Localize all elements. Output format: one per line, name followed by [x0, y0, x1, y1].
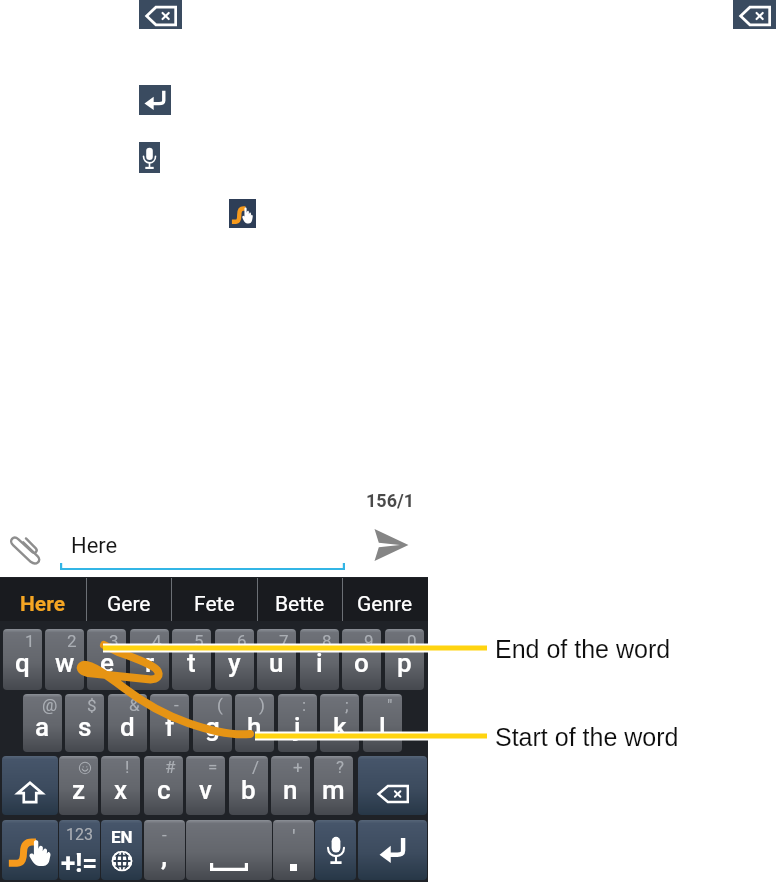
staticText: Here: [20, 592, 66, 617]
button[interactable]: 3: [87, 629, 126, 690]
button[interactable]: -: [150, 694, 189, 752]
button[interactable]: 9: [342, 629, 381, 690]
staticText: c: [157, 775, 171, 805]
button[interactable]: ;: [320, 694, 359, 752]
button[interactable]: Trace input: [229, 199, 256, 228]
button[interactable]: 0: [385, 629, 424, 690]
staticText: 5: [194, 631, 204, 651]
button[interactable]: +: [271, 756, 310, 815]
button[interactable]: Trace input: [2, 820, 58, 880]
staticText: m: [322, 775, 345, 805]
staticText: Gere: [107, 592, 151, 617]
staticText: /: [252, 757, 260, 777]
button[interactable]: Space: [186, 820, 272, 880]
button[interactable]: ?: [314, 756, 353, 815]
staticText: Fete: [194, 592, 235, 617]
staticText: o: [354, 648, 369, 678]
staticText: =: [208, 757, 218, 777]
staticText: 3: [109, 631, 119, 651]
staticText: @: [42, 695, 58, 715]
button[interactable]: Send: [368, 524, 412, 566]
button[interactable]: 6: [215, 629, 254, 690]
button[interactable]: Shift: [2, 756, 58, 815]
staticText: Bette: [275, 592, 325, 617]
button[interactable]: Backspace: [733, 0, 776, 29]
button[interactable]: ): [235, 694, 274, 752]
button[interactable]: -: [144, 820, 185, 880]
button[interactable]: 8: [300, 629, 339, 690]
staticText: g: [205, 712, 220, 742]
staticText: h: [247, 712, 262, 742]
button[interactable]: 2: [45, 629, 84, 690]
button[interactable]: Genre: [342, 578, 428, 621]
staticText: &: [129, 695, 140, 715]
staticText: -: [174, 695, 179, 715]
button[interactable]: ": [363, 694, 402, 752]
staticText: ;: [345, 695, 349, 715]
staticText: 1: [25, 631, 35, 651]
staticText: w: [55, 648, 75, 678]
button[interactable]: Backspace: [358, 756, 427, 815]
staticText: 7: [279, 631, 289, 651]
button[interactable]: Period: [273, 820, 314, 880]
button[interactable]: #: [144, 756, 183, 815]
button[interactable]: 5: [172, 629, 211, 690]
button[interactable]: (: [193, 694, 232, 752]
button[interactable]: Fete: [171, 578, 257, 621]
button[interactable]: /: [229, 756, 268, 815]
staticText: ): [259, 695, 265, 715]
staticText: 0: [407, 631, 417, 651]
staticText: y: [228, 648, 241, 678]
button[interactable]: Backspace: [139, 0, 182, 29]
staticText: d: [120, 712, 135, 742]
staticText: q: [15, 648, 30, 678]
button[interactable]: Bette: [257, 578, 343, 621]
staticText: f: [165, 712, 175, 742]
button[interactable]: z: [59, 756, 98, 815]
staticText: +: [293, 757, 303, 777]
staticText: Start of the word: [495, 723, 679, 751]
staticText: v: [199, 775, 212, 805]
button[interactable]: Language: [101, 820, 142, 880]
staticText: !: [125, 757, 130, 777]
staticText: $: [87, 695, 97, 715]
staticText: k: [333, 712, 347, 742]
button[interactable]: =: [186, 756, 225, 815]
staticText: i: [316, 648, 323, 678]
staticText: 9: [364, 631, 374, 651]
staticText: Here: [71, 533, 118, 559]
button[interactable]: Voice input: [139, 142, 160, 173]
button[interactable]: Gere: [86, 578, 172, 621]
staticText: j: [294, 712, 301, 742]
staticText: 4: [152, 631, 162, 651]
button[interactable]: 123: [59, 820, 100, 880]
staticText: (: [217, 695, 223, 715]
button[interactable]: 4: [130, 629, 169, 690]
staticText: 2: [67, 631, 77, 651]
staticText: t: [187, 648, 196, 678]
button[interactable]: Here: [0, 578, 86, 621]
button[interactable]: Voice input: [315, 820, 356, 880]
button[interactable]: 7: [257, 629, 296, 690]
staticText: a: [35, 712, 50, 742]
staticText: +!=: [61, 848, 98, 878]
staticText: ?: [336, 757, 345, 777]
staticText: e: [100, 648, 114, 678]
button[interactable]: $: [65, 694, 104, 752]
staticText: s: [78, 712, 92, 742]
button[interactable]: Enter: [358, 820, 427, 880]
staticText: z: [72, 775, 86, 805]
staticText: x: [114, 775, 128, 805]
button[interactable]: :: [278, 694, 317, 752]
staticText: ': [292, 825, 296, 850]
staticText: 123: [66, 825, 93, 844]
button[interactable]: !: [101, 756, 140, 815]
staticText: r: [145, 648, 155, 678]
button[interactable]: &: [108, 694, 147, 752]
staticText: p: [397, 648, 412, 678]
button[interactable]: Enter: [139, 85, 171, 115]
button[interactable]: @: [23, 694, 62, 752]
button[interactable]: Attach file: [9, 531, 47, 567]
staticText: ": [387, 695, 393, 715]
button[interactable]: 1: [3, 629, 42, 690]
